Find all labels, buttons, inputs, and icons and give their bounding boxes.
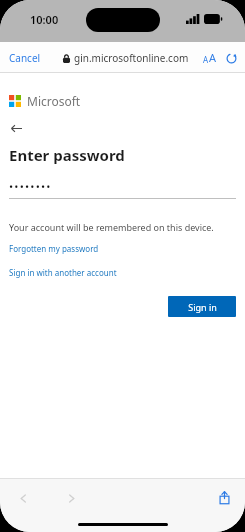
button[interactable]: Forward [60, 487, 82, 509]
staticText: Sign in with another account [9, 267, 117, 278]
button[interactable]: Back [9, 121, 23, 135]
button[interactable]: Cancel [6, 47, 44, 69]
button[interactable]: Reload [223, 50, 239, 66]
staticText: A [203, 54, 209, 65]
button[interactable]: Sign in [168, 296, 236, 317]
button[interactable]: Sign in with another account [9, 267, 117, 278]
staticText: 10:00 [30, 12, 59, 27]
button[interactable]: Forgotten my password [9, 243, 99, 254]
staticText: Enter password [9, 145, 125, 165]
staticText: gin.microsoftonline.com [74, 51, 189, 65]
staticText: Sign in [188, 301, 217, 313]
staticText: Microsoft [27, 93, 81, 109]
button[interactable]: Text size [201, 48, 219, 67]
button[interactable]: Share [213, 486, 235, 508]
button[interactable]: •••••••• [9, 179, 52, 194]
staticText: Your account will be remembered on this … [9, 221, 214, 233]
staticText: A [209, 50, 217, 65]
button[interactable]: Back [12, 487, 34, 509]
staticText: Forgotten my password [9, 243, 99, 254]
staticText: Cancel [9, 51, 41, 65]
